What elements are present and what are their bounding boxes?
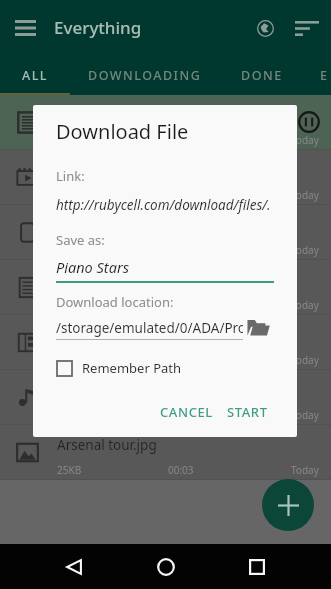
- staticText: Today: [291, 133, 319, 147]
- button[interactable]: Relax music.mp3: [0, 370, 331, 424]
- button[interactable]: Weekly news.epub: [0, 315, 331, 369]
- staticText: Weekly news.epub: [57, 326, 175, 344]
- staticText: 00:05: [168, 408, 194, 422]
- staticText: 00:14: [168, 353, 194, 367]
- staticText: 2.3MB: [57, 133, 87, 147]
- button[interactable]: Home: [149, 550, 182, 583]
- staticText: Today: [291, 408, 319, 422]
- staticText: Everything: [54, 16, 142, 39]
- staticText: Today: [291, 463, 319, 477]
- button[interactable]: Open browser: [246, 9, 284, 47]
- staticText: 120MB: [57, 188, 90, 202]
- staticText: Today: [291, 188, 319, 202]
- staticText: ALL: [22, 67, 49, 84]
- button[interactable]: Document list.doc: [0, 260, 331, 314]
- button[interactable]: Open navigation drawer: [9, 12, 41, 44]
- staticText: 00:20: [168, 188, 194, 202]
- button[interactable]: Pause download: [297, 110, 321, 134]
- button[interactable]: DOWNLOADING: [70, 55, 220, 95]
- button[interactable]: Fundamentals with CSS.pdf: [0, 95, 331, 149]
- staticText: http://rubycell.com/download/files/.: [56, 196, 271, 214]
- button[interactable]: Choose download folder: [243, 314, 274, 340]
- button[interactable]: E: [304, 55, 331, 95]
- button[interactable]: CANCEL: [154, 395, 219, 429]
- staticText: Today: [291, 298, 319, 312]
- button[interactable]: Mobile design.apk: [0, 205, 331, 259]
- button[interactable]: Sort list: [288, 9, 326, 47]
- staticText: Save as:: [56, 231, 105, 249]
- staticText: DONE: [241, 67, 283, 84]
- staticText: Link:: [56, 167, 85, 185]
- button[interactable]: Add new download: [262, 479, 314, 531]
- staticText: Download location:: [56, 293, 174, 311]
- staticText: /storage/emulated/0/ADA/Pro: [56, 319, 243, 337]
- staticText: 25KB: [57, 463, 82, 477]
- staticText: CANCEL: [160, 403, 213, 421]
- button[interactable]: Recent apps: [240, 550, 273, 583]
- staticText: 00:03: [168, 463, 194, 477]
- button[interactable]: ALL: [0, 55, 70, 95]
- staticText: 18MB: [57, 243, 85, 257]
- staticText: 4MB: [57, 353, 79, 367]
- staticText: Remember Path: [82, 359, 182, 377]
- button[interactable]: Arsenal tour.jpg: [0, 425, 331, 479]
- button[interactable]: Movie trailer.mp4: [0, 150, 331, 204]
- button[interactable]: Remember Path: [56, 357, 182, 379]
- staticText: 00:08: [168, 298, 194, 312]
- button[interactable]: Back: [57, 550, 90, 583]
- staticText: Piano Stars: [56, 257, 129, 277]
- staticText: Document list.doc: [57, 271, 172, 289]
- staticText: START: [227, 403, 268, 421]
- button[interactable]: START: [221, 395, 274, 429]
- staticText: DOWNLOADING: [88, 67, 202, 84]
- staticText: Arsenal tour.jpg: [57, 436, 157, 454]
- staticText: E: [320, 67, 329, 84]
- staticText: Movie trailer.mp4: [57, 161, 167, 179]
- staticText: Today: [291, 243, 319, 257]
- staticText: Today: [291, 353, 319, 367]
- staticText: 00:12: [168, 133, 194, 147]
- staticText: 240KB: [57, 298, 87, 312]
- button[interactable]: DONE: [220, 55, 304, 95]
- staticText: Download File: [56, 118, 189, 145]
